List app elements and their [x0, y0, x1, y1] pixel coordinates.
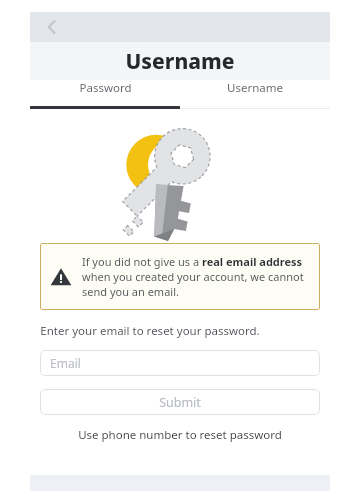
- button[interactable]: Password: [30, 80, 180, 96]
- button[interactable]: Email: [40, 350, 320, 376]
- staticText: Email: [50, 355, 81, 371]
- button[interactable]: Submit: [40, 389, 320, 415]
- staticText: Username: [227, 80, 283, 96]
- staticText: Enter your email to reset your password.: [40, 323, 260, 339]
- staticText: Username: [125, 47, 235, 76]
- button[interactable]: Use phone number to reset password: [0, 427, 360, 443]
- staticText: Submit: [159, 394, 201, 411]
- button[interactable]: Username: [180, 80, 330, 96]
- button[interactable]: Back: [38, 13, 66, 41]
- staticText: Password: [79, 80, 132, 96]
- staticText: Use phone number to reset password: [78, 427, 282, 443]
- staticText: If you did not give us a real email addr…: [82, 254, 310, 299]
